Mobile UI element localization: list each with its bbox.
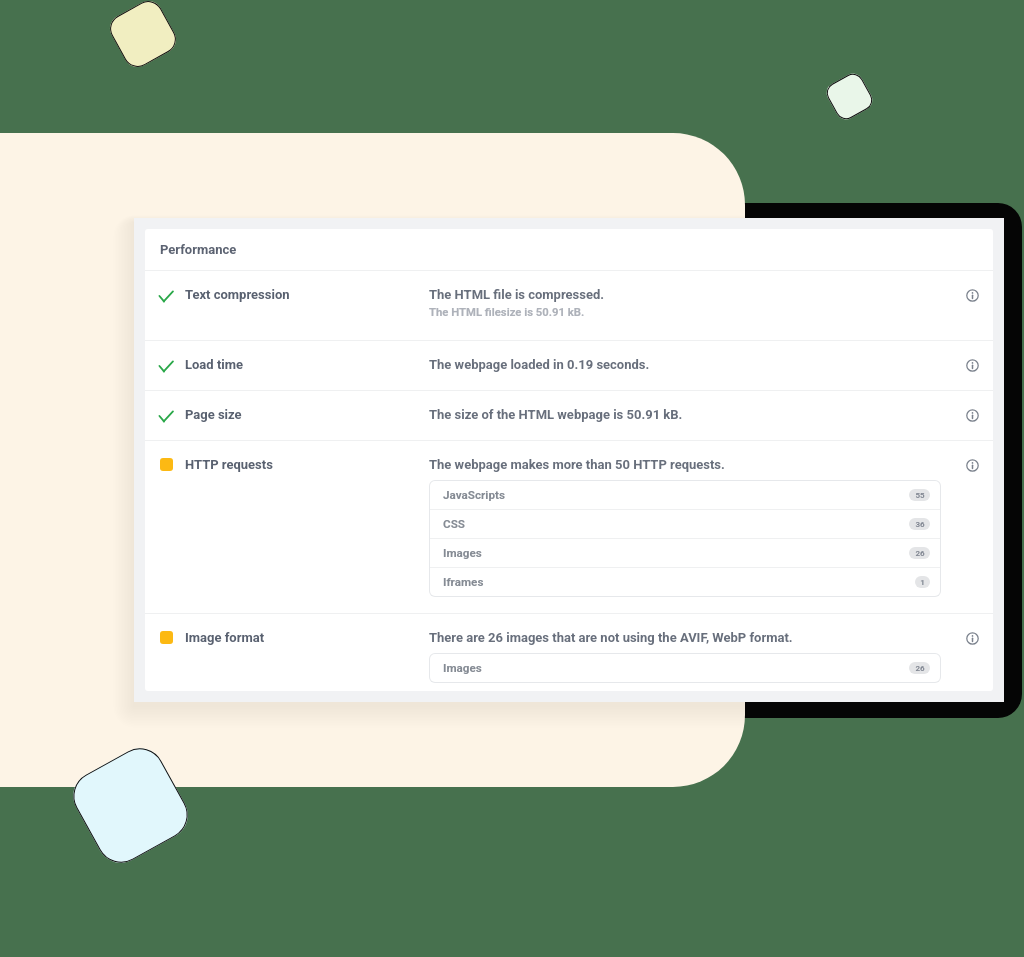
button[interactable]: Page size bbox=[145, 391, 993, 440]
button[interactable]: More information bbox=[949, 630, 993, 645]
staticText: The HTML file is compressed. bbox=[429, 287, 605, 302]
staticText: The webpage makes more than 50 HTTP requ… bbox=[429, 457, 725, 472]
staticText: Performance bbox=[160, 242, 237, 257]
button[interactable]: CSS bbox=[430, 510, 940, 538]
button[interactable]: Images bbox=[430, 539, 940, 567]
staticText: HTTP requests bbox=[185, 457, 273, 472]
staticText: Image format bbox=[185, 630, 265, 645]
staticText: Text compression bbox=[185, 287, 290, 302]
button[interactable]: Image format bbox=[145, 614, 993, 691]
staticText: 26 bbox=[915, 664, 925, 673]
staticText: Images bbox=[443, 661, 482, 675]
button[interactable]: JavaScripts bbox=[430, 481, 940, 509]
staticText: Page size bbox=[185, 407, 242, 422]
staticText: Images bbox=[443, 546, 482, 560]
staticText: CSS bbox=[443, 517, 466, 531]
button[interactable]: More information bbox=[949, 287, 993, 302]
button[interactable]: More information bbox=[949, 407, 993, 422]
button[interactable]: Text compression bbox=[145, 271, 993, 340]
staticText: There are 26 images that are not using t… bbox=[429, 630, 793, 645]
staticText: Iframes bbox=[443, 575, 484, 589]
button[interactable]: Images bbox=[430, 654, 940, 682]
staticText: 55 bbox=[915, 491, 925, 500]
staticText: The webpage loaded in 0.19 seconds. bbox=[429, 357, 650, 372]
button[interactable]: Load time bbox=[145, 341, 993, 390]
button[interactable]: HTTP requests bbox=[145, 441, 993, 613]
staticText: 1 bbox=[920, 578, 925, 587]
staticText: The size of the HTML webpage is 50.91 kB… bbox=[429, 407, 683, 422]
button[interactable]: More information bbox=[949, 457, 993, 472]
button[interactable]: More information bbox=[949, 357, 993, 372]
staticText: Load time bbox=[185, 357, 243, 372]
staticText: JavaScripts bbox=[443, 488, 505, 502]
staticText: The HTML filesize is 50.91 kB. bbox=[429, 306, 585, 319]
staticText: 36 bbox=[915, 520, 925, 529]
staticText: 26 bbox=[915, 549, 925, 558]
button[interactable]: Iframes bbox=[430, 568, 940, 596]
